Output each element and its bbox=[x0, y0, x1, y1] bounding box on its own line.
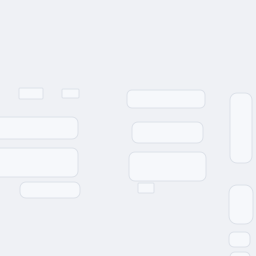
button[interactable]: Add card bbox=[138, 183, 154, 193]
button[interactable]: Card 9 bbox=[229, 232, 250, 247]
button[interactable]: To Do bbox=[19, 88, 43, 99]
button[interactable]: Card 2 bbox=[0, 148, 78, 177]
button[interactable]: Card 5 bbox=[132, 122, 203, 143]
button[interactable]: Card 10 bbox=[230, 252, 250, 256]
button[interactable]: 3 items bbox=[62, 89, 79, 98]
button[interactable]: Card 7 bbox=[230, 93, 252, 163]
button[interactable]: Card 4 bbox=[127, 90, 205, 108]
button[interactable]: Card 1 bbox=[0, 117, 78, 139]
button[interactable]: Card 3 bbox=[20, 182, 80, 198]
button[interactable]: Card 8 bbox=[229, 185, 253, 224]
button[interactable]: Card 6 bbox=[129, 152, 206, 181]
